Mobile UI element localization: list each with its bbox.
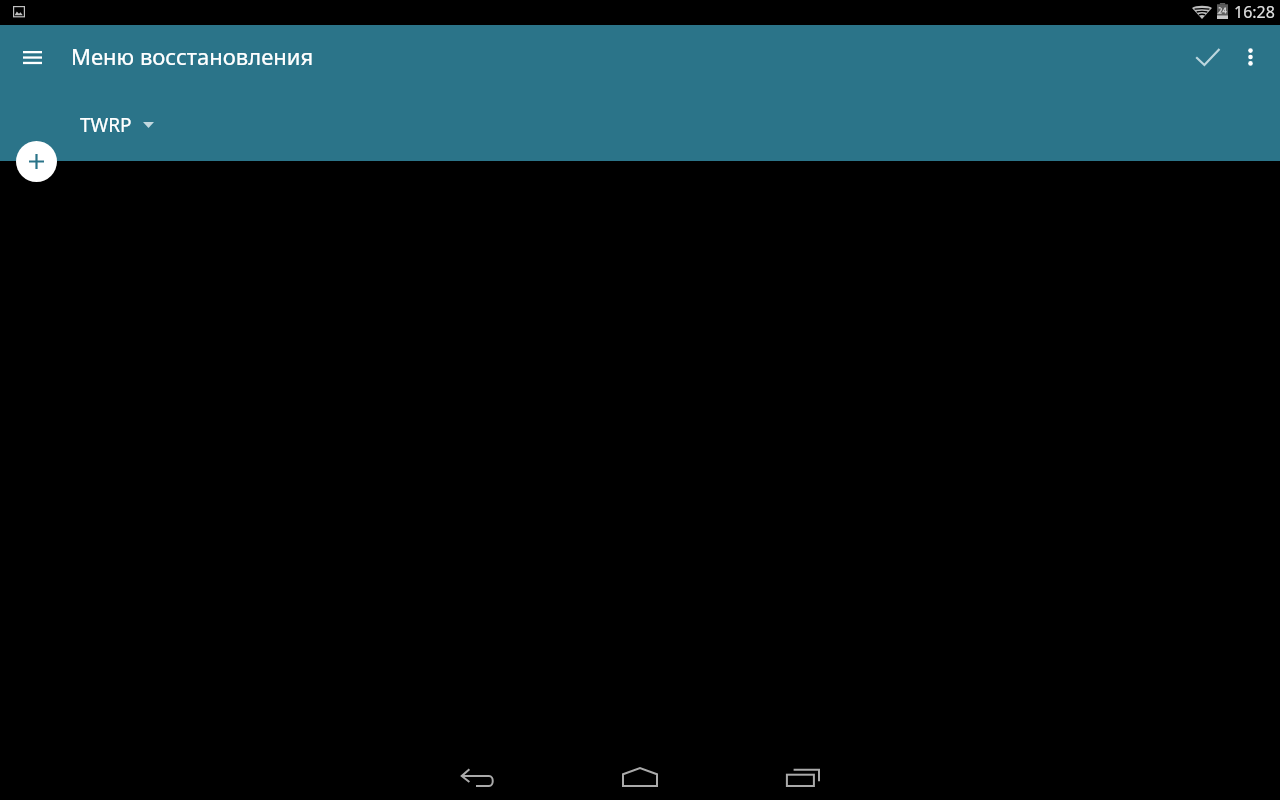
button[interactable]: TWRP [80, 112, 154, 138]
staticText: TWRP [80, 112, 132, 138]
button[interactable]: Home [610, 757, 670, 797]
staticText: Меню восстановления [71, 41, 314, 71]
button[interactable]: Confirm [1188, 37, 1228, 77]
button[interactable]: More options [1230, 37, 1270, 77]
button[interactable]: Back [448, 753, 508, 800]
staticText: 16:28 [1234, 1, 1275, 23]
button[interactable]: Menu [12, 37, 52, 77]
button[interactable]: Recent apps [773, 757, 833, 797]
button[interactable]: Add [16, 141, 57, 182]
